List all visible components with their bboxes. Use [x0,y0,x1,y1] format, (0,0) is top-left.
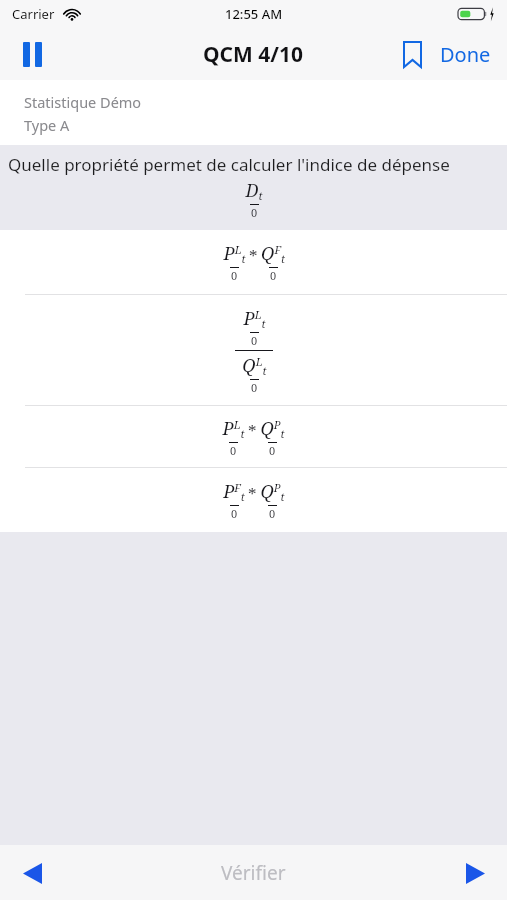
staticText: * [248,420,257,443]
staticText: QLt [242,353,267,378]
staticText: 0 [269,506,276,521]
staticText: Dt [245,178,263,203]
staticText: 0 [269,443,276,458]
button[interactable]: Vérifier [197,850,310,896]
staticText: QPt [260,416,285,441]
staticText: 0 [230,443,237,458]
staticText: 0 [231,506,238,521]
button[interactable]: PLt [0,406,507,467]
staticText: * [249,245,258,268]
staticText: Carrier [12,5,55,23]
staticText: 0 [251,333,258,348]
staticText: PLt [243,306,266,331]
staticText: PLt [222,416,245,441]
staticText: PLt [223,241,246,266]
staticText: 0 [231,268,238,283]
staticText: Done [440,41,491,68]
staticText: * [248,483,257,506]
button[interactable]: PLt [0,295,507,405]
staticText: 0 [251,380,258,395]
button[interactable]: PLt [0,230,507,294]
staticText: 0 [270,268,277,283]
button[interactable]: PFt [0,468,507,532]
staticText: 0 [251,205,258,220]
staticText: 12:55 AM [225,5,283,23]
button[interactable]: Pause [10,32,54,76]
staticText: QFt [261,241,285,266]
staticText: QCM 4/10 [203,40,304,69]
staticText: Type A [24,115,70,135]
staticText: Vérifier [221,860,286,886]
staticText: Statistique Démo [24,92,142,112]
button[interactable]: Next [453,851,497,895]
button[interactable]: Bookmark [390,32,434,76]
button[interactable]: Done [434,33,497,76]
staticText: Quelle propriété permet de calculer l'in… [8,153,450,176]
staticText: QPt [260,479,285,504]
staticText: PFt [223,479,245,504]
button[interactable]: Previous [10,851,54,895]
